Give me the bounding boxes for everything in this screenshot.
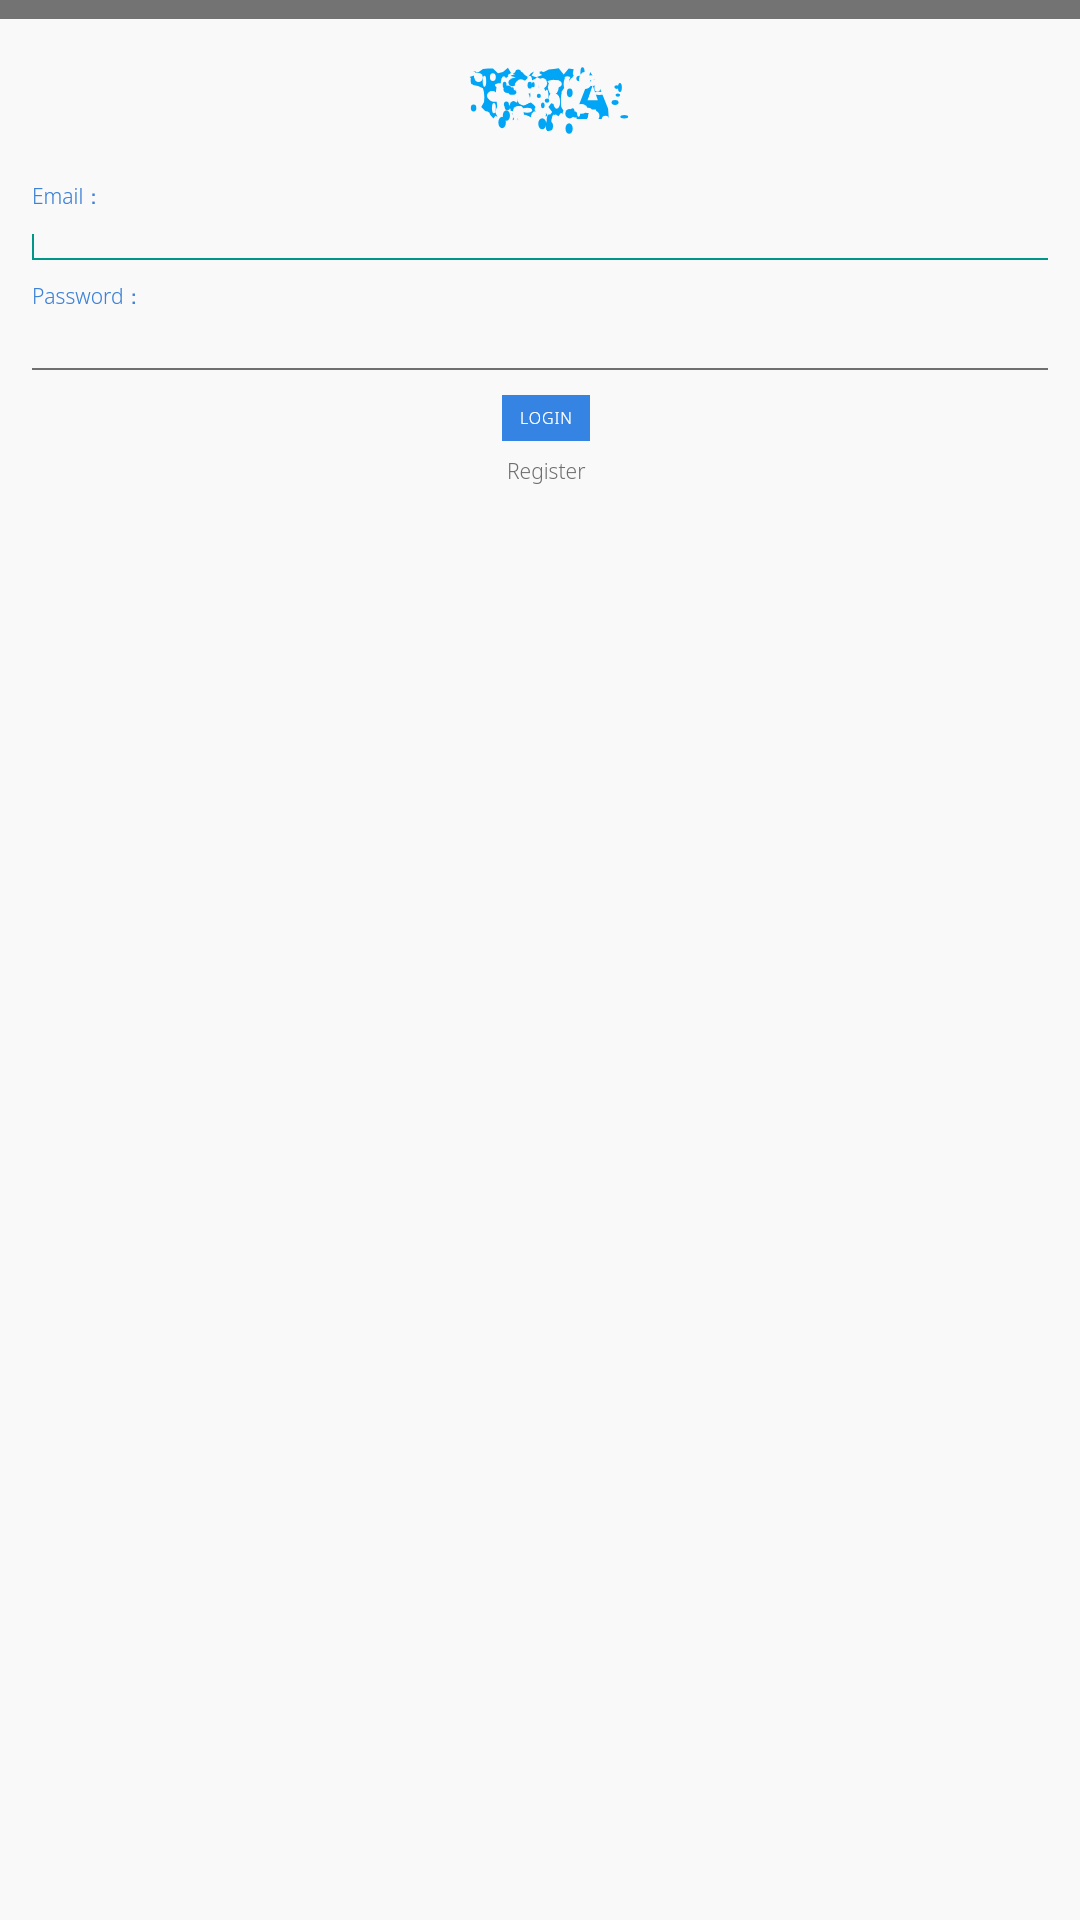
button[interactable]	[32, 229, 1048, 260]
button[interactable]	[32, 339, 1048, 370]
staticText: Password：	[32, 282, 145, 311]
staticText: Register	[507, 457, 586, 486]
button[interactable]: LOGIN	[502, 395, 590, 441]
staticText: Email：	[32, 182, 105, 211]
button[interactable]: Register	[507, 457, 586, 486]
staticText: LOGIN	[520, 407, 573, 429]
